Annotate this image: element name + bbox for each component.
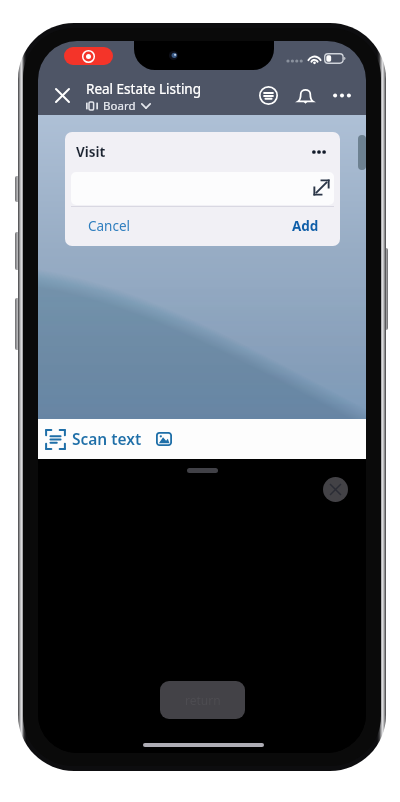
staticText: Board <box>103 98 136 114</box>
button[interactable]: More options <box>326 79 358 111</box>
button[interactable]: Cancel <box>88 217 131 235</box>
button[interactable]: Board <box>86 98 151 114</box>
button[interactable]: return <box>160 681 245 719</box>
button[interactable]: Scan text <box>41 424 141 453</box>
button[interactable] <box>71 172 334 205</box>
button[interactable]: More options <box>303 136 335 168</box>
staticText: Visit <box>76 143 106 161</box>
button[interactable]: Notifications <box>289 79 321 111</box>
button[interactable]: Close <box>45 78 79 112</box>
staticText: Scan text <box>72 428 142 449</box>
staticText: Real Estate Listing <box>86 80 202 98</box>
button[interactable]: Close <box>323 477 348 502</box>
staticText: Cancel <box>88 217 131 235</box>
staticText: Add <box>292 217 319 235</box>
button[interactable]: Filter <box>252 79 284 111</box>
button[interactable] <box>64 47 113 65</box>
button[interactable]: Insert image <box>151 424 177 453</box>
button[interactable]: Add <box>292 217 319 235</box>
